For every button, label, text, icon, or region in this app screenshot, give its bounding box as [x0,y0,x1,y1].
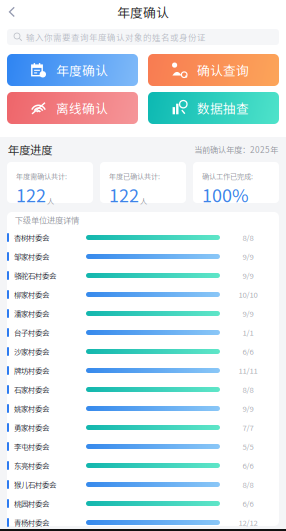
staticText: 7/7 [242,422,253,433]
button[interactable]: 输入你需要查询年度确认对象的姓名或身份证 [7,29,279,45]
staticText: 年度确认 [117,3,169,21]
staticText: 年度需确认共计: [16,171,67,181]
button[interactable]: 离线确认 [7,92,138,124]
button[interactable]: 骆驼石村委会 [7,266,279,285]
staticText: 牌坊村委会 [14,365,49,376]
button[interactable]: 东亮村委会 [7,456,279,475]
staticText: 6/6 [242,498,253,509]
button[interactable]: 牌坊村委会 [7,361,279,380]
staticText: 8/8 [242,384,253,395]
staticText: 1/1 [242,327,253,338]
staticText: 9/9 [242,308,253,319]
staticText: 邹家村委会 [14,251,49,262]
staticText: 年度确认 [56,61,108,79]
staticText: 确认查询 [197,61,249,79]
staticText: 122 [109,181,139,207]
staticText: 确认工作已完成: [202,171,253,181]
staticText: 数据抽查 [197,99,249,117]
staticText: 杏树村委会 [14,232,49,243]
staticText: 石家村委会 [14,384,49,395]
staticText: 人 [140,196,147,206]
button[interactable]: 沙家村委会 [7,342,279,361]
staticText: 沙家村委会 [14,346,49,357]
button[interactable]: 桃园村委会 [7,494,279,513]
staticText: 下级单位进度详情 [15,214,79,226]
staticText: 100% [202,181,249,207]
staticText: 骆驼石村委会 [14,270,56,281]
button[interactable]: 邹家村委会 [7,247,279,266]
staticText: 12/12 [238,517,257,528]
staticText: 8/8 [242,232,253,243]
button[interactable]: 石家村委会 [7,380,279,399]
button[interactable]: 杏树村委会 [7,228,279,247]
staticText: 9/9 [242,403,253,414]
staticText: 年度已确认共计: [109,171,160,181]
staticText: 离线确认 [56,99,108,117]
button[interactable]: 年度确认 [7,54,138,86]
staticText: 10/10 [238,289,257,300]
staticText: 122 [16,181,46,207]
button[interactable]: 李屯村委会 [7,437,279,456]
staticText: 猴儿石村委会 [14,479,56,490]
staticText: 6/6 [242,346,253,357]
staticText: 输入你需要查询年度确认对象的姓名或身份证 [26,31,206,43]
button[interactable]: 猴儿石村委会 [7,475,279,494]
staticText: 人 [47,196,54,206]
staticText: 9/9 [242,251,253,262]
staticText: 9/9 [242,270,253,281]
button[interactable]: 姚家村委会 [7,399,279,418]
button[interactable]: 潘家村委会 [7,304,279,323]
button[interactable]: 青杨村委会 [7,513,279,531]
staticText: 5/5 [242,441,253,452]
staticText: 潘家村委会 [14,308,49,319]
staticText: 姚家村委会 [14,403,49,414]
staticText: 8/8 [242,479,253,490]
staticText: 李屯村委会 [14,441,49,452]
staticText: 年度进度 [8,141,52,158]
staticText: 当前确认年度：2025年 [194,143,278,155]
button[interactable]: 柳家村委会 [7,285,279,304]
button[interactable]: 确认查询 [148,54,279,86]
button[interactable]: 返回 [0,0,24,24]
button[interactable]: 数据抽查 [148,92,279,124]
button[interactable]: 台子村委会 [7,323,279,342]
staticText: 6/6 [242,460,253,471]
button[interactable]: 勇家村委会 [7,418,279,437]
staticText: 柳家村委会 [14,289,49,300]
staticText: 11/11 [238,365,257,376]
staticText: 东亮村委会 [14,460,49,471]
staticText: 台子村委会 [14,327,49,338]
staticText: 桃园村委会 [14,498,49,509]
staticText: 勇家村委会 [14,422,49,433]
staticText: 青杨村委会 [14,517,49,528]
